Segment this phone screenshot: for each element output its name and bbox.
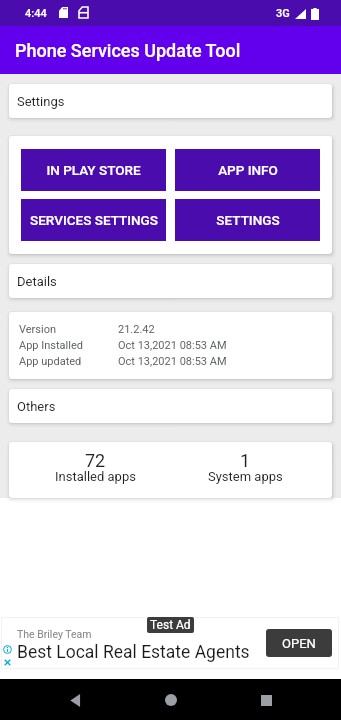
button[interactable]: SERVICES SETTINGS	[21, 199, 166, 241]
staticText: Version	[19, 323, 57, 336]
button[interactable]: SETTINGS	[175, 199, 320, 241]
button[interactable]: Ad info	[3, 645, 12, 654]
staticText: Others	[17, 399, 56, 414]
button[interactable]: Close ad	[4, 659, 11, 666]
staticText: App Installed	[19, 339, 83, 352]
button[interactable]: Others	[9, 389, 332, 423]
staticText: Installed apps	[55, 469, 136, 484]
staticText: SETTINGS	[216, 212, 280, 228]
button[interactable]: Recents	[246, 680, 286, 720]
staticText: Phone Services Update Tool	[15, 40, 241, 61]
staticText: The Briley Team	[17, 628, 92, 640]
staticText: System apps	[208, 469, 283, 484]
button[interactable]: IN PLAY STORE	[21, 149, 166, 191]
button[interactable]: Home	[151, 680, 191, 720]
staticText: 4:44	[25, 7, 47, 20]
staticText: Oct 13,2021 08:53 AM	[118, 339, 227, 352]
staticText: SERVICES SETTINGS	[30, 212, 158, 228]
staticText: 72	[85, 450, 106, 471]
staticText: 21.2.42	[118, 323, 155, 336]
button[interactable]: OPEN	[266, 629, 332, 657]
staticText: APP INFO	[218, 162, 278, 178]
staticText: App updated	[19, 355, 82, 368]
staticText: OPEN	[282, 636, 316, 651]
staticText: 1	[240, 450, 251, 471]
button[interactable]: Back	[55, 680, 95, 720]
staticText: Oct 13,2021 08:53 AM	[118, 355, 227, 368]
staticText: Test Ad	[150, 618, 191, 632]
staticText: Settings	[17, 94, 65, 109]
button[interactable]: 1	[170, 442, 320, 498]
button[interactable]: Settings	[9, 84, 332, 118]
button[interactable]: 72	[21, 442, 170, 498]
button[interactable]: APP INFO	[175, 149, 320, 191]
staticText: Best Local Real Estate Agents	[17, 642, 250, 663]
staticText: Details	[17, 274, 57, 289]
button[interactable]: Details	[9, 264, 332, 298]
staticText: 3G	[276, 7, 290, 20]
staticText: IN PLAY STORE	[46, 162, 141, 178]
